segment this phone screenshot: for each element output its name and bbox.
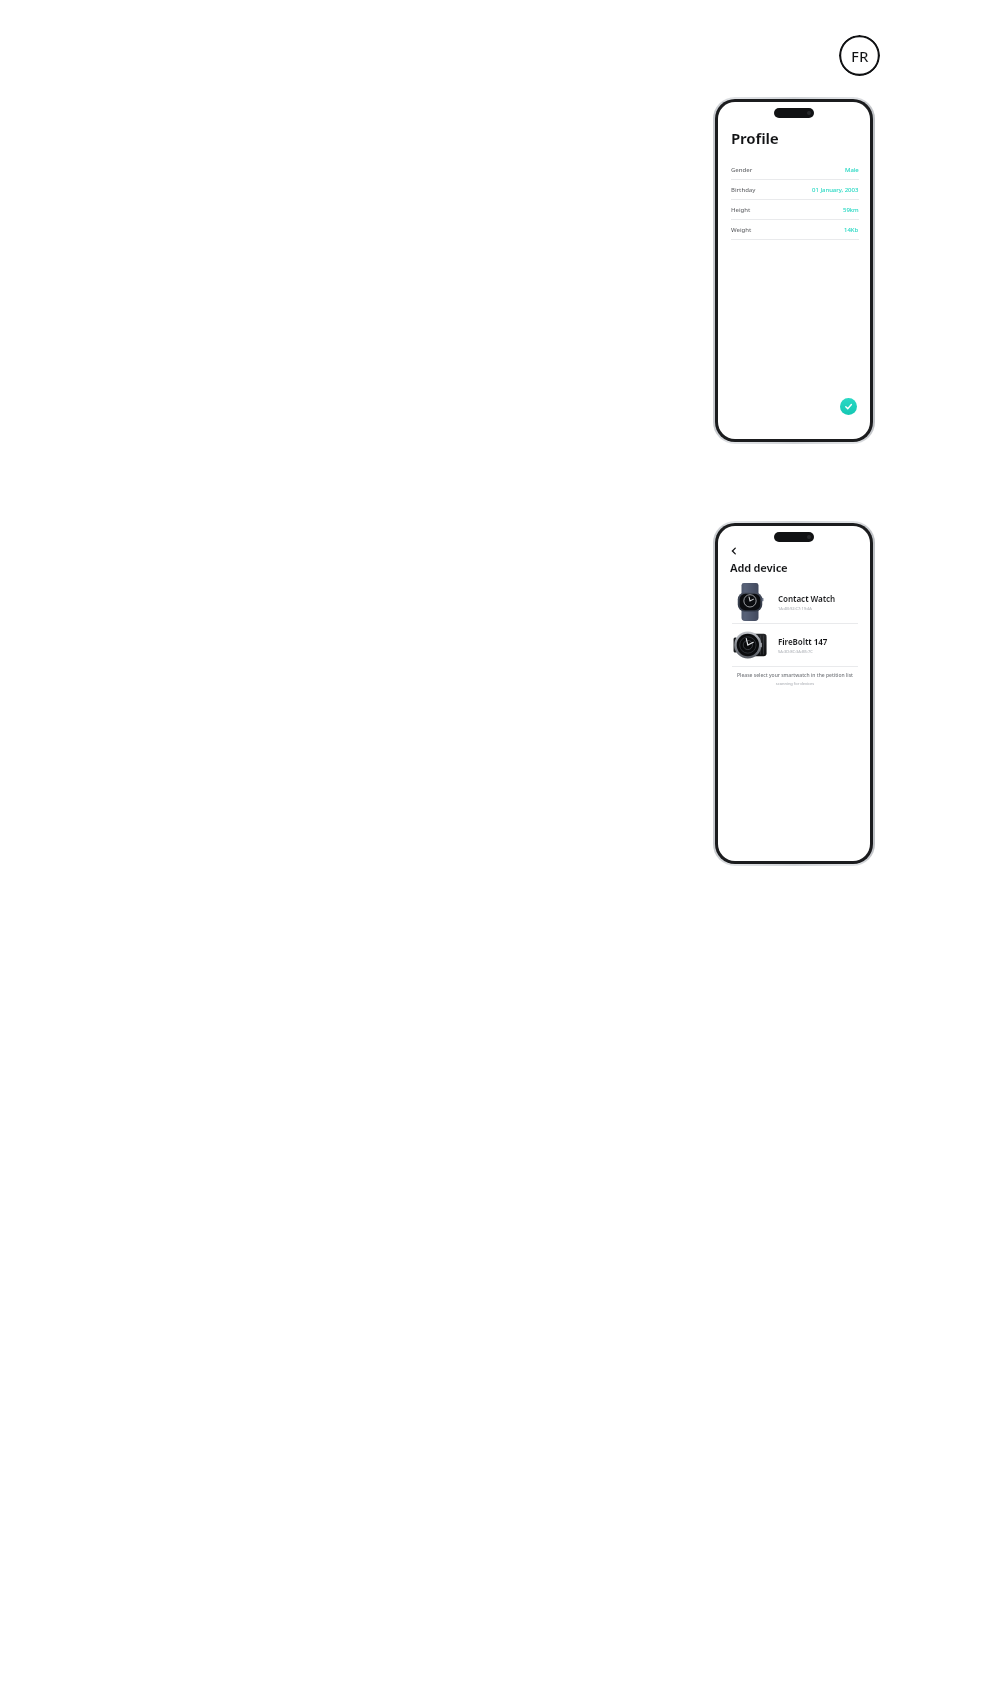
- staticText: Gender: [731, 166, 753, 174]
- staticText: FR: [851, 46, 869, 66]
- button[interactable]: Contact Watch: [730, 581, 860, 623]
- staticText: Please select your smartwatch in the pet…: [730, 672, 860, 679]
- staticText: Contact Watch: [778, 593, 836, 604]
- staticText: Add device: [730, 560, 788, 575]
- staticText: Weight: [731, 226, 752, 234]
- staticText: 59km: [843, 206, 859, 214]
- staticText: Birthday: [731, 186, 756, 194]
- button[interactable]: Gender: [731, 160, 859, 180]
- button[interactable]: Confirm: [840, 398, 857, 415]
- staticText: Profile: [731, 128, 779, 148]
- staticText: Height: [731, 206, 751, 214]
- staticText: 1A:4B:92:C7:19:4A: [778, 606, 812, 611]
- button[interactable]: Back: [730, 545, 742, 557]
- staticText: 5A:3D:8C:3A:B5:7C: [778, 649, 813, 654]
- staticText: scanning for devices: [730, 681, 860, 686]
- staticText: 01 January, 2003: [812, 186, 859, 194]
- button[interactable]: Birthday: [731, 180, 859, 200]
- staticText: 14Kb: [844, 226, 859, 234]
- button[interactable]: FR language: [839, 35, 880, 76]
- staticText: FireBoltt 147: [778, 636, 828, 647]
- button[interactable]: FireBoltt 147: [730, 624, 860, 666]
- button[interactable]: Height: [731, 200, 859, 220]
- staticText: Male: [845, 166, 859, 174]
- button[interactable]: Weight: [731, 220, 859, 240]
